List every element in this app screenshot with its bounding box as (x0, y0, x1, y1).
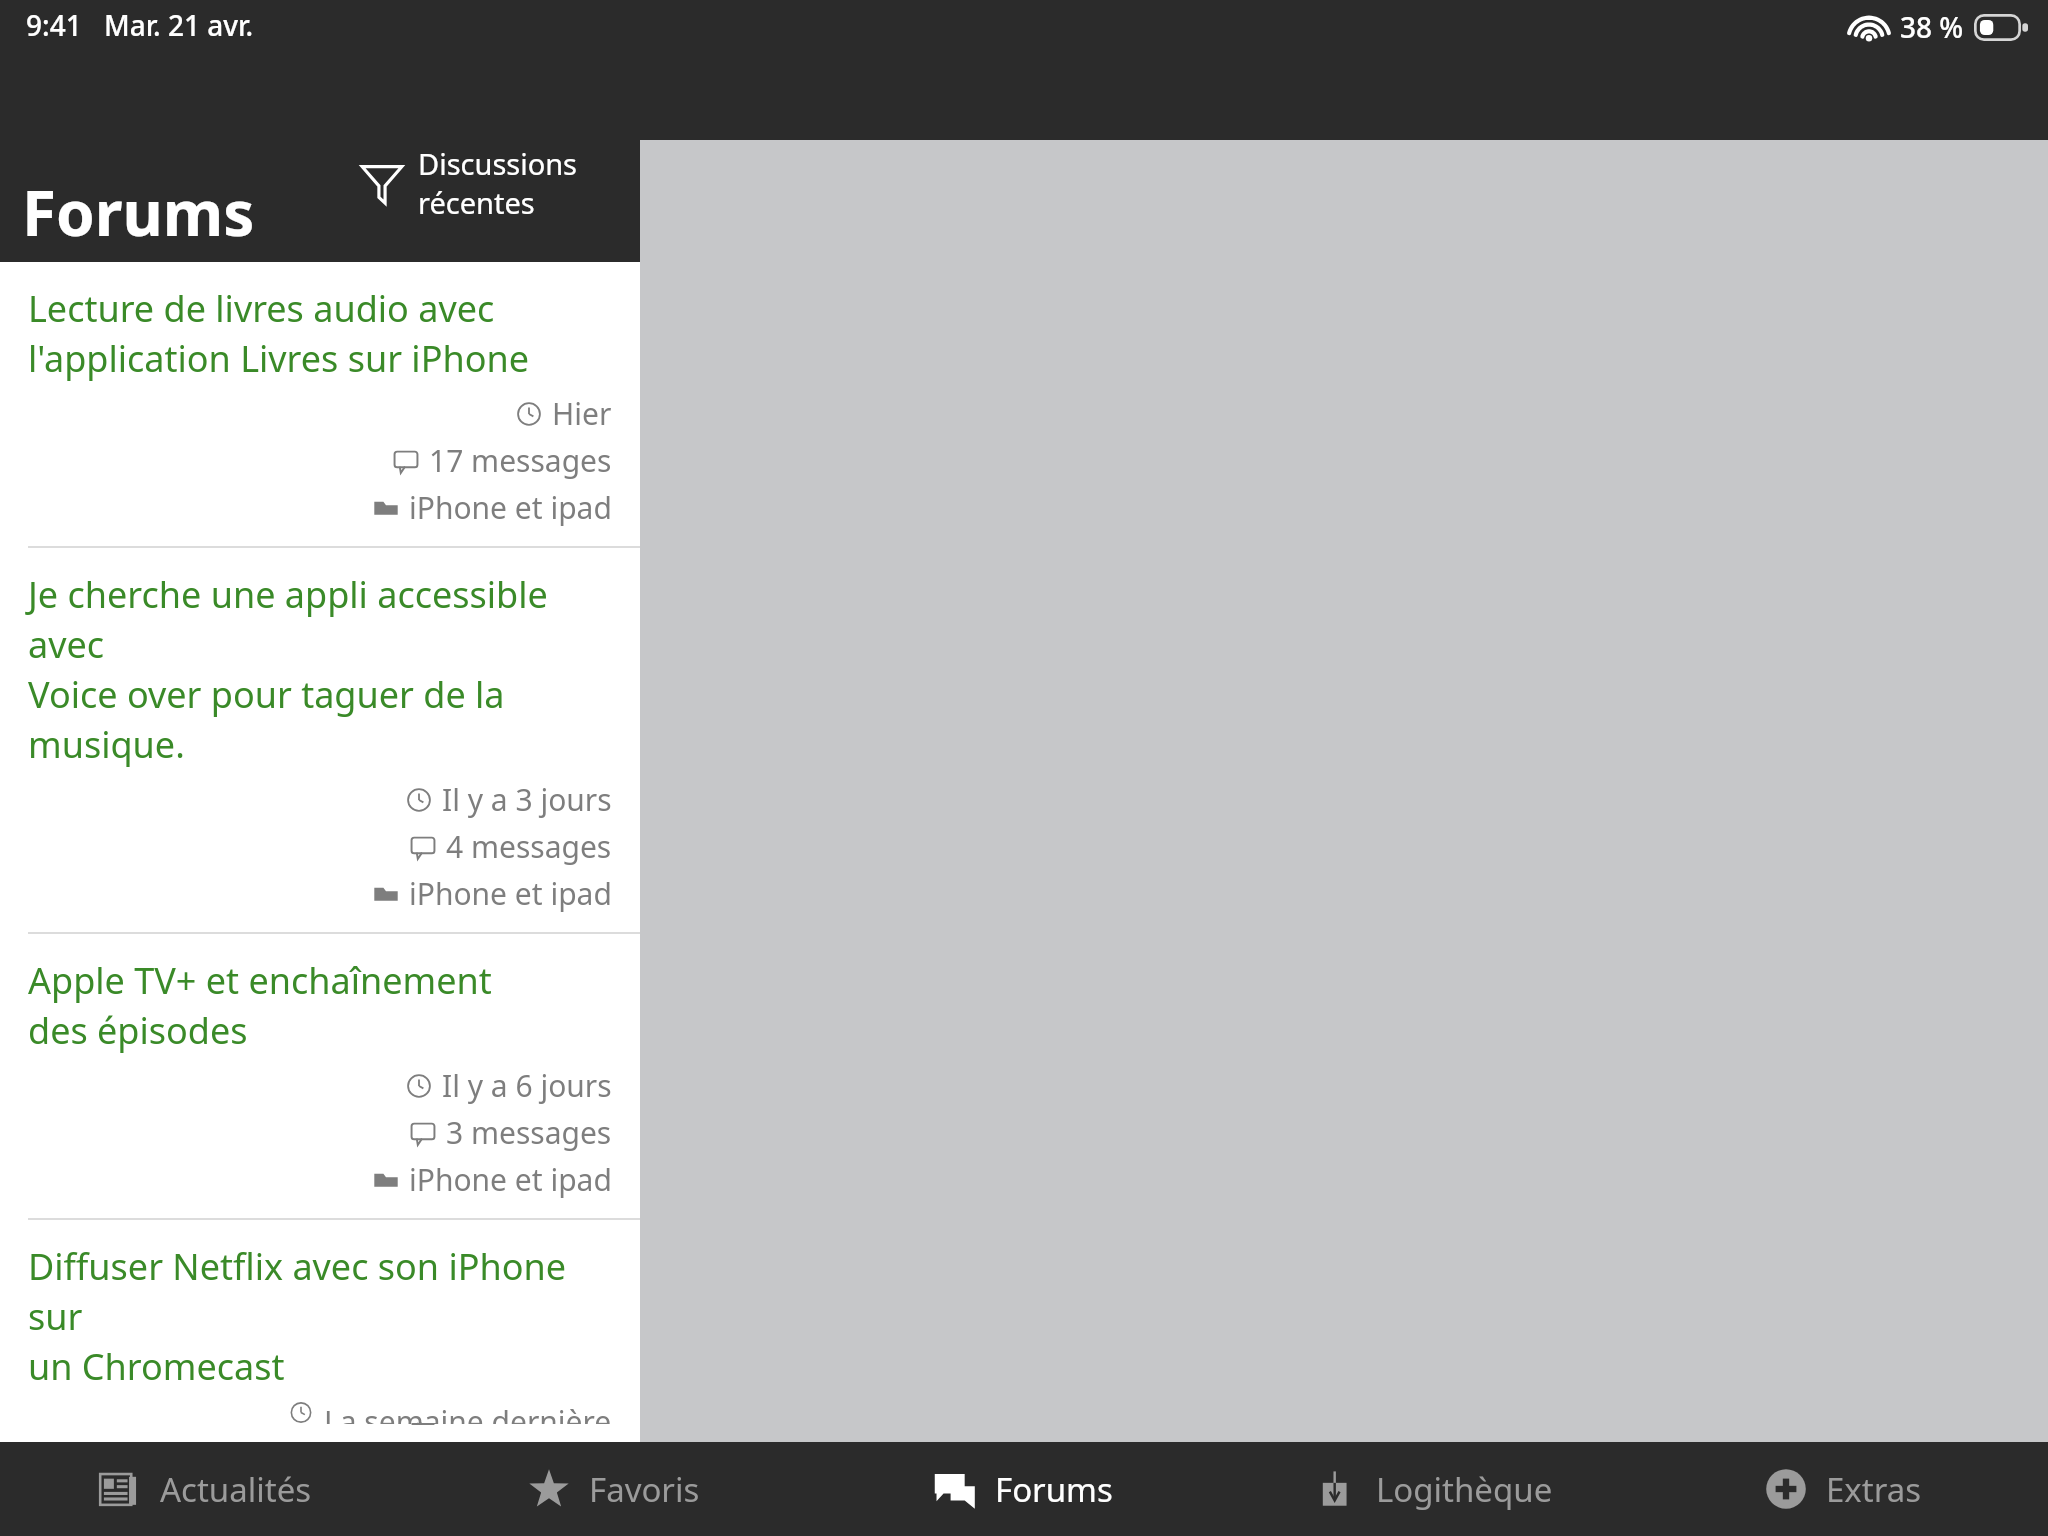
staticText: Lecture de livres audio avec l'applicati… (28, 284, 530, 383)
staticText: Mar. 21 avr. (104, 6, 254, 44)
staticText: Il y a 6 jours (442, 1065, 612, 1106)
staticText: Actualités (160, 1467, 312, 1512)
staticText: Apple TV+ et enchaînement des épisodes (28, 956, 492, 1055)
staticText: Forums (995, 1467, 1113, 1512)
staticText: iPhone et ipad (409, 873, 612, 914)
button[interactable]: Apple TV+ et enchaînement des épisodes (0, 934, 640, 1218)
button[interactable]: Lecture de livres audio avec l'applicati… (0, 262, 640, 546)
button[interactable]: Favoris (409, 1442, 818, 1536)
staticText: Il y a 3 jours (442, 779, 612, 820)
button[interactable]: Extras (1638, 1442, 2048, 1536)
staticText: Je cherche une appli accessible avec Voi… (28, 570, 612, 769)
other: Filtrer les discussions (360, 159, 404, 207)
staticText: Diffuser Netflix avec son iPhone sur un … (28, 1242, 612, 1391)
staticText: 4 messages (446, 826, 612, 867)
staticText: 3 messages (446, 1112, 612, 1153)
staticText: Logithèque (1376, 1467, 1553, 1512)
staticText: iPhone et ipad (409, 1159, 612, 1200)
staticText: Hier (552, 393, 612, 434)
staticText: Favoris (589, 1467, 700, 1512)
staticText: Forums (22, 170, 255, 254)
button[interactable]: Je cherche une appli accessible avec Voi… (0, 548, 640, 932)
button[interactable]: Logithèque (1228, 1442, 1638, 1536)
staticText: iPhone et ipad (409, 487, 612, 528)
staticText: La semaine dernière (324, 1401, 612, 1424)
button[interactable]: Filtrer les discussions (352, 140, 588, 228)
button[interactable]: Diffuser Netflix avec son iPhone sur un … (0, 1220, 640, 1442)
button[interactable]: Actualités (0, 1442, 409, 1536)
staticText: 9:41 (26, 6, 82, 44)
button[interactable]: Forums (818, 1442, 1228, 1536)
staticText: Extras (1826, 1467, 1922, 1512)
staticText: 38 % (1900, 8, 1964, 46)
staticText: 17 messages (429, 440, 612, 481)
staticText: Discussions récentes (418, 144, 578, 222)
